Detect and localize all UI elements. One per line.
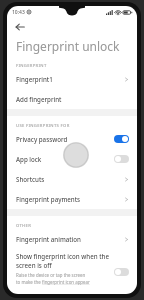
staticText: Fingerprint animation xyxy=(16,235,81,243)
button[interactable]: Shortcuts xyxy=(7,169,137,189)
button[interactable]: Show fingerprint icon when the xyxy=(7,249,137,285)
staticText: USE FINGERPRINTS FOR xyxy=(16,123,70,129)
staticText: fingerprint icon appear xyxy=(42,279,90,285)
button[interactable]: Back xyxy=(7,18,137,36)
button[interactable]: Add fingerprint xyxy=(7,89,137,109)
staticText: Add fingerprint xyxy=(16,95,62,103)
staticText: OTHER xyxy=(16,223,32,229)
button[interactable]: Off xyxy=(114,155,129,163)
staticText: to make the xyxy=(16,279,42,285)
staticText: Fingerprint1 xyxy=(16,75,53,83)
button[interactable]: On xyxy=(114,135,129,143)
button[interactable]: App lock xyxy=(7,149,137,169)
staticText: screen is off xyxy=(16,261,52,269)
staticText: Privacy password xyxy=(16,135,68,143)
staticText: App lock xyxy=(16,155,42,163)
button[interactable]: Fingerprint payments xyxy=(7,189,137,209)
staticText: Fingerprint unlock xyxy=(16,38,120,54)
staticText: Shortcuts xyxy=(16,175,45,183)
staticText: Show fingerprint icon when the xyxy=(16,252,109,260)
staticText: Raise the device or tap the screen xyxy=(16,272,86,278)
button[interactable]: Back xyxy=(14,21,26,33)
staticText: 10:43 xyxy=(12,9,25,16)
button[interactable]: Off xyxy=(114,268,129,276)
button[interactable]: Privacy password xyxy=(7,129,137,149)
button[interactable]: Fingerprint1 xyxy=(7,69,137,89)
button[interactable]: Fingerprint animation xyxy=(7,229,137,249)
staticText: FINGERPRINT xyxy=(16,63,47,69)
staticText: Fingerprint payments xyxy=(16,195,81,203)
